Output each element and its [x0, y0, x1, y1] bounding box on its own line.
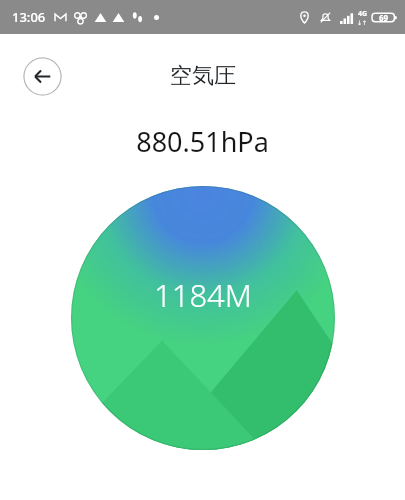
staticText: 空気圧: [170, 62, 236, 90]
staticText: 880.51hPa: [0, 123, 405, 160]
staticText: 13:06: [12, 8, 46, 26]
staticText: 1184M: [154, 274, 252, 316]
button[interactable]: Back: [23, 57, 62, 96]
staticText: ↓↑: [357, 19, 368, 26]
staticText: 4G: [358, 9, 368, 19]
staticText: 69: [379, 12, 389, 23]
